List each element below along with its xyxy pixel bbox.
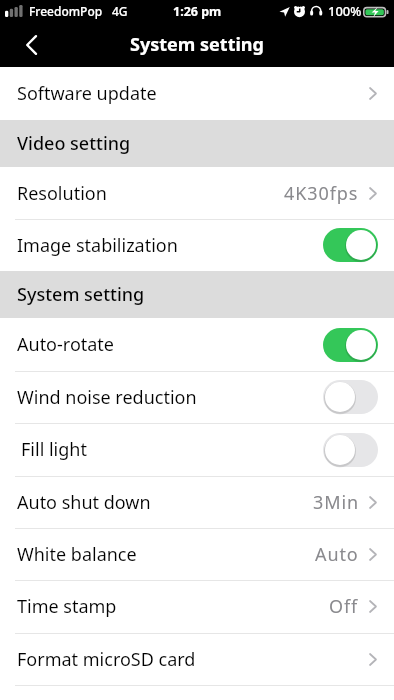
staticText: Fill light (21, 437, 87, 462)
staticText: Format microSD card (17, 647, 196, 672)
staticText: Auto (315, 542, 359, 567)
staticText: Software update (17, 81, 157, 106)
button[interactable]: Software update (0, 67, 394, 120)
button[interactable]: Video setting (0, 120, 394, 167)
button[interactable]: Auto shut down (0, 476, 394, 528)
button[interactable]: Switch off (323, 380, 378, 414)
button[interactable]: White balance (0, 528, 394, 580)
staticText: 4G (112, 3, 128, 19)
staticText: Auto-rotate (17, 332, 115, 357)
button[interactable]: Wind noise reduction (0, 371, 394, 423)
staticText: 100% (328, 2, 362, 20)
button[interactable]: Switch on (323, 228, 378, 262)
staticText: Wind noise reduction (17, 385, 197, 410)
staticText: 3Min (313, 490, 359, 515)
staticText: Auto shut down (17, 490, 151, 515)
button[interactable]: Switch on (323, 328, 378, 362)
staticText: FreedomPop (29, 3, 103, 19)
staticText: 1:26 pm (173, 3, 222, 20)
button[interactable]: Fill light (0, 423, 394, 476)
button[interactable]: Back (0, 22, 62, 67)
button[interactable]: Format microSD card (0, 633, 394, 685)
staticText: System setting (130, 32, 264, 57)
button[interactable]: Auto-rotate (0, 318, 394, 371)
staticText: Time stamp (17, 594, 117, 619)
staticText: 4K30fps (284, 181, 359, 206)
button[interactable]: Image stabilization (0, 219, 394, 271)
staticText: Image stabilization (17, 233, 178, 258)
staticText: Off (329, 594, 359, 619)
staticText: Resolution (17, 181, 107, 206)
staticText: White balance (17, 542, 137, 567)
button[interactable]: Time stamp (0, 580, 394, 633)
staticText: System setting (17, 282, 145, 307)
staticText: Video setting (17, 131, 131, 156)
button[interactable]: Switch off (323, 433, 378, 467)
button[interactable]: Resolution (0, 167, 394, 219)
button[interactable]: System setting (0, 271, 394, 318)
